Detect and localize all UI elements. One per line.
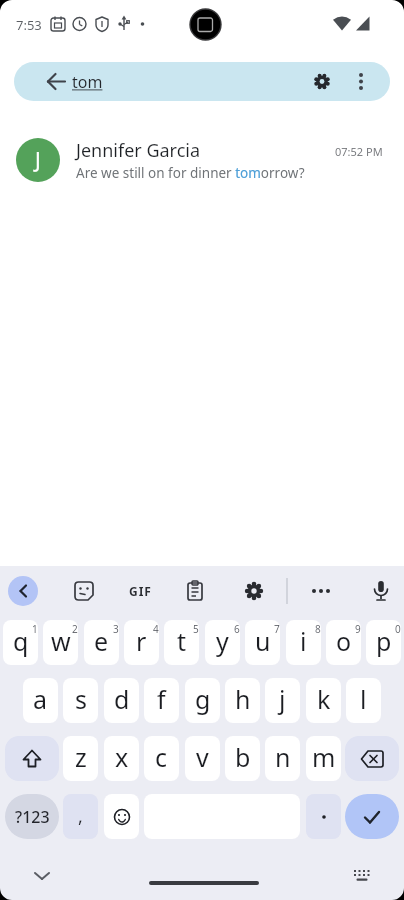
button[interactable] <box>3 620 38 665</box>
staticText: 0 <box>395 622 401 636</box>
button[interactable] <box>286 620 321 665</box>
staticText: 3 <box>113 622 119 636</box>
staticText: e <box>94 624 109 658</box>
staticText: u <box>255 624 271 658</box>
staticText: GIF <box>129 583 152 599</box>
button[interactable]: n <box>265 736 300 781</box>
staticText: o <box>336 624 352 658</box>
staticText: w <box>51 624 71 658</box>
button[interactable] <box>303 573 339 609</box>
staticText: b <box>235 740 251 774</box>
staticText: 1 <box>32 622 38 636</box>
button[interactable] <box>177 573 213 609</box>
button[interactable] <box>345 736 399 781</box>
button[interactable]: m <box>306 736 341 781</box>
staticText: p <box>376 624 392 658</box>
button[interactable]: ?123 <box>5 794 59 839</box>
staticText: tom <box>72 71 103 93</box>
staticText: 9 <box>355 622 361 636</box>
staticText: Jennifer Garcia <box>76 138 201 163</box>
button[interactable]: d <box>104 678 139 723</box>
staticText: , <box>78 804 83 829</box>
staticText: s <box>75 682 87 716</box>
button[interactable] <box>28 862 56 890</box>
button[interactable] <box>347 62 375 101</box>
button[interactable] <box>345 794 399 839</box>
staticText: g <box>195 682 211 716</box>
staticText: l <box>360 682 367 716</box>
button[interactable]: GIF <box>118 573 162 609</box>
button[interactable] <box>306 794 341 839</box>
button[interactable] <box>326 620 361 665</box>
button[interactable] <box>43 620 78 665</box>
button[interactable]: j <box>265 678 300 723</box>
button[interactable] <box>348 862 376 890</box>
button[interactable]: h <box>225 678 260 723</box>
button[interactable]: l <box>346 678 381 723</box>
staticText: 4 <box>153 622 159 636</box>
button[interactable] <box>5 736 59 781</box>
staticText: n <box>275 740 291 774</box>
staticText: q <box>13 624 29 658</box>
button[interactable] <box>236 573 272 609</box>
button[interactable] <box>84 620 119 665</box>
staticText: k <box>317 682 331 716</box>
staticText: v <box>196 740 209 774</box>
button[interactable] <box>366 620 401 665</box>
staticText: Are we still on for dinner tomorrow? <box>76 164 305 182</box>
staticText: j <box>279 682 286 716</box>
staticText: 7 <box>274 622 280 636</box>
button[interactable]: , <box>63 794 98 839</box>
button[interactable] <box>14 62 70 101</box>
button[interactable] <box>205 620 240 665</box>
staticText: z <box>75 740 87 774</box>
staticText: f <box>157 682 166 716</box>
button[interactable]: k <box>306 678 341 723</box>
button[interactable]: x <box>104 736 139 781</box>
staticText: 07:52 PM <box>335 144 383 159</box>
staticText: d <box>114 682 130 716</box>
button[interactable] <box>363 573 399 609</box>
staticText: y <box>216 624 229 658</box>
button[interactable]: c <box>144 736 179 781</box>
button[interactable]: g <box>185 678 220 723</box>
staticText: 6 <box>234 622 240 636</box>
staticText: x <box>115 740 129 774</box>
button[interactable]: J <box>0 128 404 194</box>
staticText: m <box>312 740 336 774</box>
staticText: 7:53 <box>16 16 42 34</box>
button[interactable] <box>164 620 199 665</box>
staticText: h <box>235 682 251 716</box>
staticText: 5 <box>193 622 199 636</box>
button[interactable]: f <box>144 678 179 723</box>
staticText: ?123 <box>15 806 50 828</box>
staticText: J <box>35 146 41 175</box>
button[interactable]: a <box>23 678 58 723</box>
button[interactable] <box>245 620 280 665</box>
button[interactable]: b <box>225 736 260 781</box>
button[interactable] <box>8 576 38 606</box>
button[interactable]: tom <box>14 62 390 101</box>
button[interactable]: s <box>63 678 98 723</box>
button[interactable] <box>104 794 139 839</box>
button[interactable] <box>124 620 159 665</box>
button[interactable] <box>66 573 102 609</box>
staticText: t <box>177 624 187 658</box>
button[interactable] <box>308 62 336 101</box>
staticText: 8 <box>315 622 321 636</box>
staticText: i <box>300 624 307 658</box>
staticText: a <box>33 682 48 716</box>
staticText: 2 <box>72 622 78 636</box>
button[interactable]: z <box>63 736 98 781</box>
button[interactable]: v <box>185 736 220 781</box>
staticText: r <box>136 624 147 658</box>
staticText: c <box>155 740 168 774</box>
